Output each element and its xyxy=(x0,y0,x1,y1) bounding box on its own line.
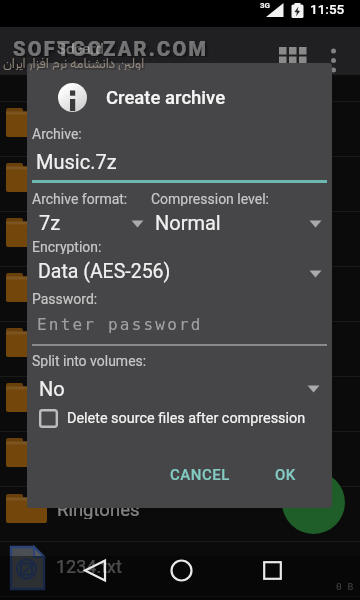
staticText: No xyxy=(39,377,65,400)
staticText: Delete source files after compression xyxy=(67,410,306,427)
staticText: Music.7z xyxy=(36,150,117,173)
button[interactable] xyxy=(263,561,282,580)
button[interactable] xyxy=(0,542,360,596)
staticText: Split into volumes: xyxy=(32,353,147,368)
staticText: Password: xyxy=(32,291,98,306)
staticText: Ringtones xyxy=(57,499,140,519)
button[interactable]: OK xyxy=(258,462,312,488)
staticText: OK xyxy=(275,466,296,484)
staticText: Archive: xyxy=(32,126,82,141)
staticText: Sdcard xyxy=(57,40,104,57)
button[interactable] xyxy=(32,374,327,400)
button[interactable] xyxy=(32,259,327,285)
staticText: Data (AES-256) xyxy=(38,260,171,283)
button[interactable] xyxy=(329,47,338,74)
button[interactable] xyxy=(279,47,307,74)
button[interactable] xyxy=(170,559,193,582)
button[interactable] xyxy=(151,208,327,234)
button[interactable] xyxy=(32,208,147,234)
staticText: 11:55 xyxy=(310,1,345,17)
staticText: Create archive xyxy=(106,87,226,109)
staticText: 0 B xyxy=(336,581,354,592)
button[interactable] xyxy=(0,487,360,542)
button[interactable]: CANCEL xyxy=(160,462,240,488)
staticText: Encryption: xyxy=(32,239,102,254)
staticText: SOFTGOZAR.COM xyxy=(13,37,209,57)
button[interactable] xyxy=(83,559,107,582)
staticText: Enter password xyxy=(37,315,203,334)
staticText: CANCEL xyxy=(170,466,230,484)
button[interactable]: Music.7z xyxy=(36,149,256,173)
button[interactable] xyxy=(282,471,345,534)
staticText: Normal xyxy=(155,211,221,234)
staticText: اولین دانشنامه نرم افزار ایران xyxy=(3,53,145,70)
button[interactable] xyxy=(32,310,327,340)
button[interactable] xyxy=(36,406,326,431)
staticText: Compression level: xyxy=(151,191,269,206)
staticText: 3G xyxy=(260,1,271,10)
staticText: Archive format: xyxy=(32,191,128,206)
staticText: 1234.txt xyxy=(56,556,122,577)
staticText: 7z xyxy=(39,211,61,234)
